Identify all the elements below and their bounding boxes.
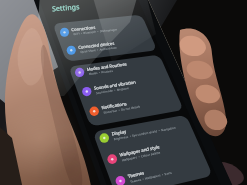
button[interactable]: Phone showing Settings [0, 0, 247, 185]
